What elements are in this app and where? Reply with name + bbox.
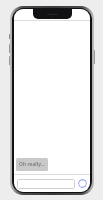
staticText: Oh really... [19,161,45,168]
button[interactable]: Send message [78,179,87,188]
button[interactable] [17,179,75,189]
button[interactable]: Oh really... [16,158,48,171]
